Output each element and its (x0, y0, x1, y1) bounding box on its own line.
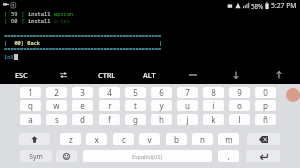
staticText: a (28, 114, 33, 125)
button[interactable]: y (151, 100, 172, 111)
button[interactable]: Sym (20, 150, 52, 162)
staticText: 5:27 PM (271, 1, 297, 10)
staticText: 7 (185, 87, 190, 98)
button[interactable]: h (151, 114, 172, 125)
button[interactable]: 4 (99, 87, 120, 98)
button[interactable]: x (86, 133, 107, 145)
staticText: l (238, 114, 241, 125)
button[interactable]: g (125, 114, 146, 125)
staticText: lnX (4, 53, 14, 60)
button[interactable]: n (192, 133, 213, 145)
staticText: 6 (159, 87, 164, 98)
button[interactable]: TAB (42, 64, 85, 85)
staticText: 00) Back (8, 39, 41, 46)
button[interactable]: j (177, 114, 198, 125)
button[interactable]: r (99, 100, 120, 111)
button[interactable]: q (20, 100, 41, 111)
button[interactable]: UP (257, 64, 300, 85)
staticText: wpscan (54, 10, 74, 17)
staticText: 8 (211, 87, 216, 98)
button[interactable]: ñ (255, 114, 276, 125)
button[interactable]: t (125, 100, 146, 111)
staticText: > (14, 53, 18, 60)
button[interactable]: Space (83, 150, 212, 162)
staticText: Sym (29, 152, 43, 161)
button[interactable]: z (60, 133, 81, 145)
button[interactable]: 2 (46, 87, 67, 98)
staticText: ] (18, 17, 28, 24)
button[interactable]: 0 (255, 87, 276, 98)
staticText: r (108, 100, 112, 111)
staticText: Español(US) (132, 153, 163, 160)
button[interactable]: c (113, 133, 134, 145)
staticText: g (133, 114, 138, 125)
button[interactable]: f (99, 114, 120, 125)
staticText: c (122, 134, 126, 145)
button[interactable]: e (72, 100, 93, 111)
button[interactable]: 8 (203, 87, 224, 98)
button[interactable]: DOWN (214, 64, 257, 85)
staticText: install (28, 10, 54, 17)
button[interactable]: a (20, 114, 41, 125)
button[interactable]: k (203, 114, 224, 125)
staticText: w (53, 100, 60, 111)
button[interactable]: o (229, 100, 250, 111)
button[interactable]: i (203, 100, 224, 111)
button[interactable]: w (46, 100, 67, 111)
staticText: x (94, 134, 99, 145)
staticText: ] (18, 10, 28, 17)
staticText: [ (4, 10, 11, 17)
staticText: 1 (28, 87, 33, 98)
button[interactable]: v (139, 133, 160, 145)
button[interactable]: u (177, 100, 198, 111)
staticText: CTRL (98, 70, 116, 80)
staticText: m (225, 134, 233, 145)
button[interactable]: ALT (128, 64, 171, 85)
staticText: 59 (11, 10, 18, 17)
button[interactable]: m (218, 133, 239, 145)
staticText: | (4, 39, 8, 46)
button[interactable]: Backspace (247, 133, 280, 145)
staticText: | (159, 39, 163, 46)
button[interactable]: Shift (19, 133, 50, 145)
staticText: ALT (143, 70, 156, 80)
staticText: 3 (80, 87, 85, 98)
staticText: o (237, 100, 242, 111)
staticText: 0 (263, 87, 268, 98)
staticText: 9 (237, 87, 242, 98)
button[interactable]: d (72, 114, 93, 125)
staticText: k (211, 114, 216, 125)
button[interactable]: 9 (229, 87, 250, 98)
button[interactable]: 5 (125, 87, 146, 98)
button[interactable]: 1 (20, 87, 41, 98)
staticText: u (185, 100, 190, 111)
staticText: z (69, 134, 73, 145)
staticText: s (55, 114, 59, 125)
staticText: install (28, 17, 54, 24)
button[interactable]: 3 (72, 87, 93, 98)
staticText: p (263, 100, 268, 111)
staticText: ESC (15, 70, 28, 80)
staticText: e (80, 100, 85, 111)
staticText: a-rex (54, 17, 71, 24)
button[interactable]: l (229, 114, 250, 125)
button[interactable]: ESC (0, 64, 42, 85)
staticText: 60 (11, 17, 18, 24)
staticText: y (159, 100, 164, 111)
button[interactable]: CTRL (85, 64, 128, 85)
staticText: ñ (263, 114, 268, 125)
button[interactable]: 7 (177, 87, 198, 98)
button[interactable]: 6 (151, 87, 172, 98)
staticText: [ (4, 17, 11, 24)
button[interactable]: s (46, 114, 67, 125)
staticText: 4 (107, 87, 112, 98)
button[interactable]: - (171, 64, 214, 85)
button[interactable]: p (255, 100, 276, 111)
staticText: b (174, 134, 179, 145)
button[interactable]: Enter (246, 150, 280, 162)
button[interactable]: b (166, 133, 187, 145)
staticText: n (200, 134, 205, 145)
button[interactable]: Emoji (56, 150, 77, 162)
staticText: 5 (133, 87, 138, 98)
button[interactable]: , (218, 150, 239, 162)
